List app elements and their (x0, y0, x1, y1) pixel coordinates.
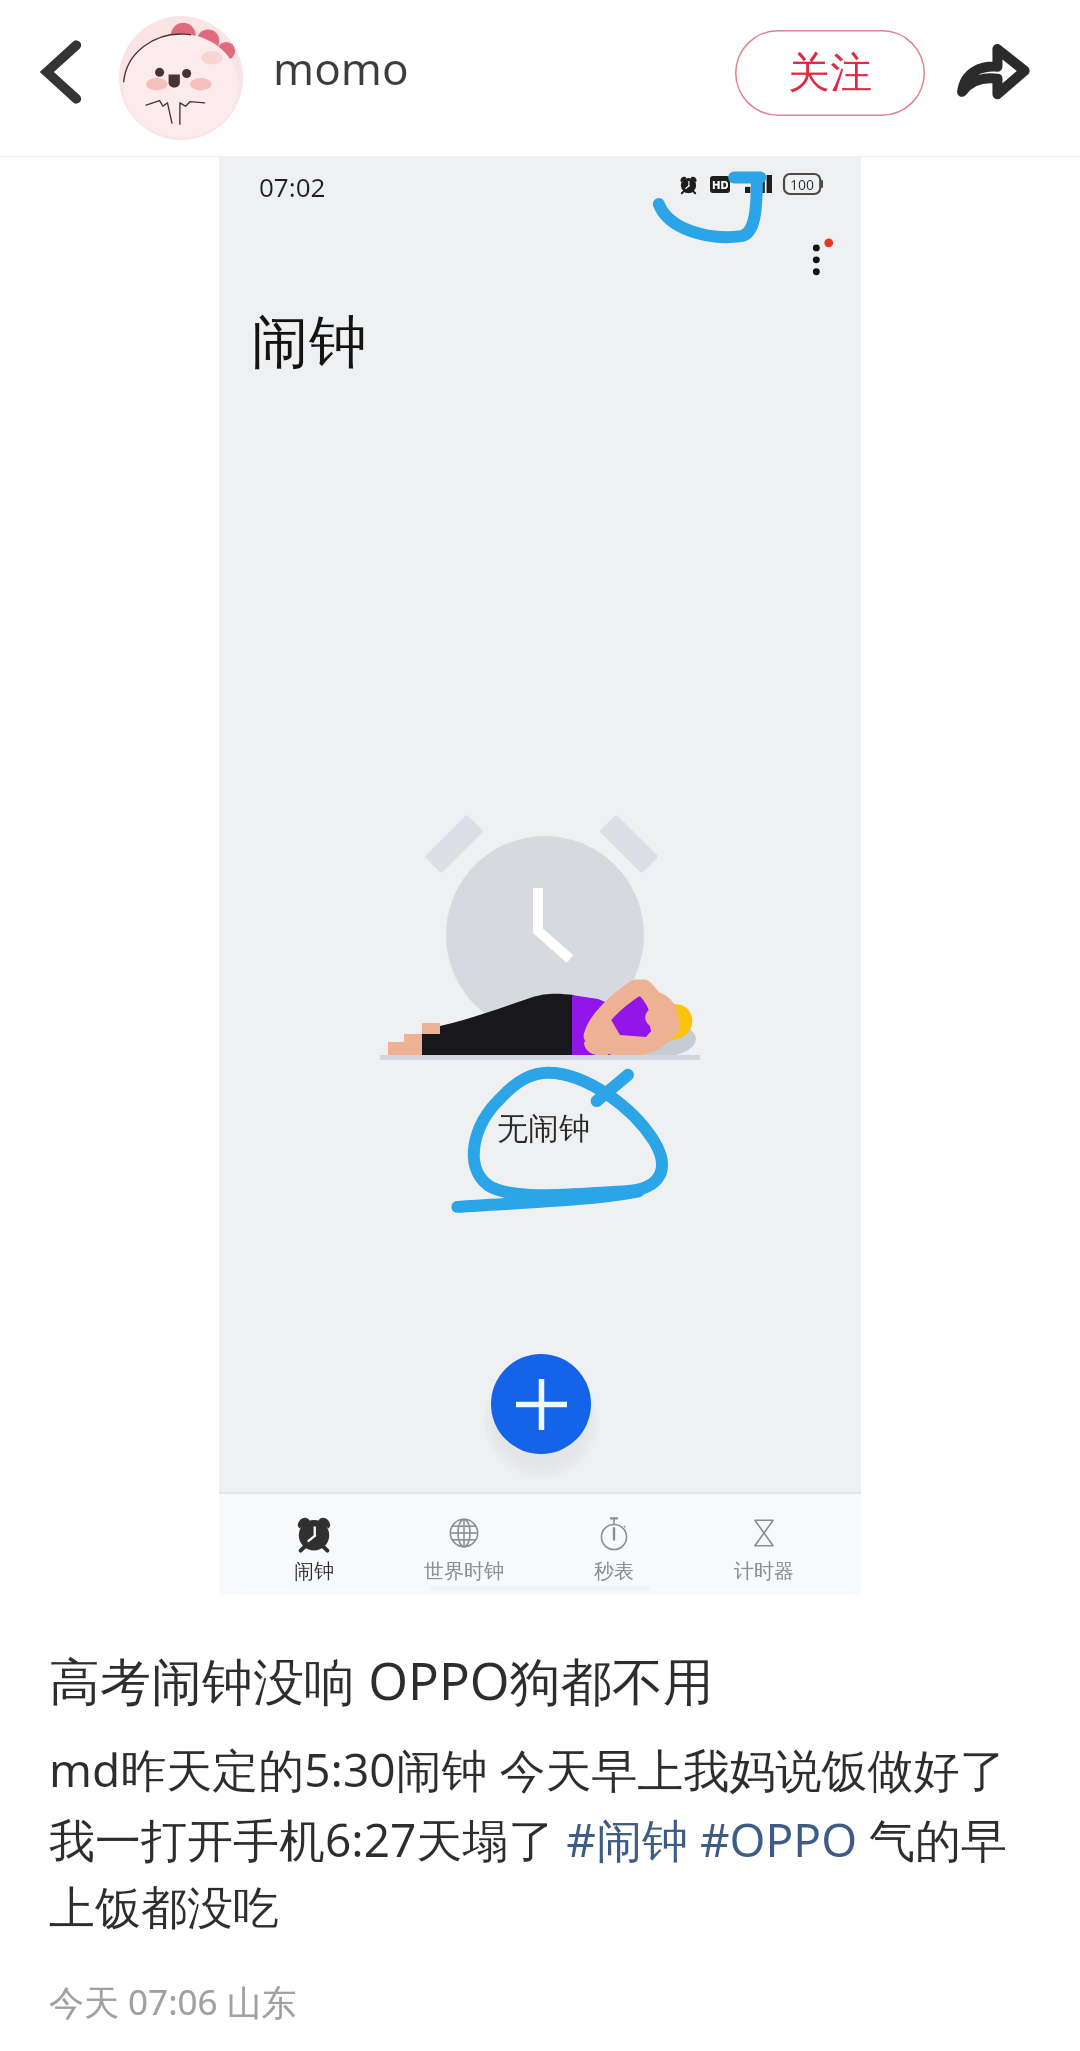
button[interactable]: Share (942, 22, 1042, 122)
button[interactable]: Back (12, 22, 112, 122)
button[interactable]: More options (791, 229, 849, 287)
staticText: md昨天定的5:30闹钟 今天早上我妈说饭做好了 我一打开手机6:27天塌了 #… (49, 1738, 1008, 1938)
button[interactable]: 闹钟 (239, 1494, 389, 1584)
staticText: 计时器 (734, 1559, 794, 1584)
staticText: 世界时钟 (424, 1559, 504, 1584)
staticText: momo (273, 38, 409, 98)
staticText: 秒表 (594, 1559, 634, 1584)
button[interactable]: 计时器 (689, 1494, 839, 1584)
staticText: 无闹钟 (497, 1109, 590, 1148)
staticText: 高考闹钟没响 OPPO狗都不用 (49, 1645, 714, 1715)
staticText: 闹钟 (294, 1559, 334, 1584)
staticText: 100 (790, 175, 815, 194)
staticText: HD (712, 177, 729, 192)
button[interactable]: 关注 (735, 30, 925, 116)
button[interactable]: 秒表 (539, 1494, 689, 1584)
button[interactable]: 世界时钟 (389, 1494, 539, 1584)
staticText: 07:02 (259, 169, 326, 204)
staticText: 今天 07:06 山东 (49, 1978, 297, 2026)
button[interactable]: Add alarm (491, 1354, 591, 1454)
staticText: 闹钟 (251, 306, 367, 379)
staticText: 关注 (788, 47, 872, 100)
